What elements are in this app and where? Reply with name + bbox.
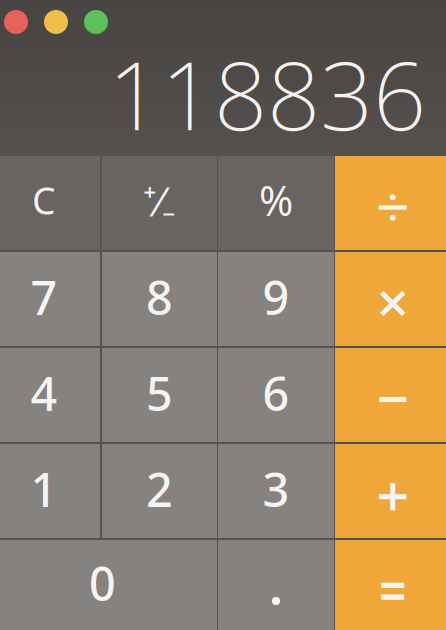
button[interactable]: %	[218, 156, 334, 250]
button[interactable]: Equals	[335, 540, 446, 630]
staticText: C	[32, 175, 56, 225]
button[interactable]: Zoom window	[84, 10, 108, 34]
staticText: 0	[89, 552, 116, 614]
button[interactable]: Minimize window	[44, 10, 68, 34]
button[interactable]: 9	[218, 252, 334, 346]
button[interactable]: 5	[102, 348, 217, 442]
button[interactable]: 0	[0, 540, 217, 630]
staticText: 3	[262, 458, 289, 520]
button[interactable]: 1	[0, 444, 100, 538]
staticText: 6	[262, 362, 289, 424]
staticText: 8	[146, 266, 173, 328]
staticText: 7	[30, 266, 57, 328]
button[interactable]: 2	[102, 444, 217, 538]
button[interactable]: 8	[102, 252, 217, 346]
staticText: 2	[146, 458, 173, 520]
button[interactable]: 7	[0, 252, 100, 346]
button[interactable]: Divide	[335, 156, 446, 250]
staticText: 5	[146, 362, 173, 424]
button[interactable]: Multiply	[335, 252, 446, 346]
staticText: 4	[30, 362, 57, 424]
button[interactable]: 6	[218, 348, 334, 442]
button[interactable]: Close window	[4, 10, 28, 34]
staticText: %	[259, 173, 293, 227]
button[interactable]: C	[0, 156, 100, 250]
button[interactable]: ⁺⁄₋	[102, 156, 217, 250]
staticText: ⁺⁄₋	[143, 174, 176, 227]
button[interactable]: Plus	[335, 444, 446, 538]
button[interactable]: 4	[0, 348, 100, 442]
button[interactable]: 3	[218, 444, 334, 538]
staticText: 118836	[108, 32, 426, 156]
staticText: 9	[262, 266, 289, 328]
button[interactable]: Decimal point	[218, 540, 334, 630]
button[interactable]: Minus	[335, 348, 446, 442]
staticText: 1	[30, 458, 57, 520]
